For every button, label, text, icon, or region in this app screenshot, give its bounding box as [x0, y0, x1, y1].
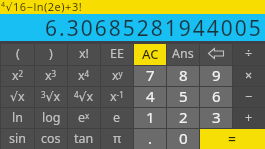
button[interactable]: = [200, 129, 265, 149]
staticText: 1 [146, 107, 155, 127]
staticText: ( [16, 45, 20, 62]
staticText: x2 [12, 67, 24, 84]
button[interactable]: 8 [167, 66, 199, 86]
button[interactable]: 4√x [68, 87, 100, 107]
staticText: tan [74, 130, 94, 147]
staticText: π [113, 130, 122, 147]
staticText: EE [110, 45, 124, 62]
staticText: × [245, 67, 253, 84]
button[interactable]: x4 [68, 66, 100, 86]
staticText: x! [79, 45, 89, 62]
staticText: log [42, 109, 61, 126]
staticText: sin [9, 130, 26, 147]
button[interactable]: tan [68, 129, 100, 149]
staticText: 2 [179, 107, 188, 127]
button[interactable]: log [35, 108, 67, 128]
staticText: 4√16−ln(2e)+3! [1, 0, 83, 13]
staticText: 7 [146, 65, 155, 85]
button[interactable]: sin [1, 129, 34, 149]
staticText: ln [12, 109, 23, 126]
button[interactable]: AC [134, 44, 166, 65]
button[interactable]: x! [68, 44, 100, 65]
button[interactable]: + [233, 108, 265, 128]
button[interactable]: x-1 [101, 87, 133, 107]
button[interactable]: cos [35, 129, 67, 149]
button[interactable]: − [233, 87, 265, 107]
button[interactable]: 0 [167, 129, 199, 149]
button[interactable]: √x [1, 87, 34, 107]
staticText: x-1 [110, 88, 124, 105]
button[interactable]: ) [35, 44, 67, 65]
button[interactable]: 5 [167, 87, 199, 107]
staticText: 6 [212, 86, 221, 106]
staticText: 8 [179, 65, 188, 85]
staticText: xy [112, 67, 123, 84]
staticText: ) [49, 45, 53, 62]
staticText: 9 [212, 65, 221, 85]
button[interactable]: 1 [134, 108, 166, 128]
staticText: √x [10, 88, 25, 105]
staticText: AC [142, 45, 159, 63]
staticText: = [228, 129, 237, 148]
staticText: 4 [146, 86, 155, 106]
button[interactable]: 9 [200, 66, 232, 86]
button[interactable]: . [134, 129, 166, 149]
staticText: 3 [212, 107, 221, 127]
staticText: x4 [78, 67, 90, 84]
staticText: 6.30685281944005 [45, 14, 263, 41]
staticText: Ans [172, 45, 194, 62]
staticText: − [245, 88, 253, 105]
staticText: 5 [179, 86, 188, 106]
staticText: ex [78, 109, 90, 126]
button[interactable]: 4 [134, 87, 166, 107]
button[interactable]: ln [1, 108, 34, 128]
button[interactable]: e [101, 108, 133, 128]
button[interactable]: EE [101, 44, 133, 65]
staticText: e [113, 109, 121, 126]
button[interactable]: Ans [167, 44, 199, 65]
staticText: 4√x [74, 88, 94, 105]
button[interactable]: π [101, 129, 133, 149]
staticText: x3 [45, 67, 57, 84]
staticText: . [148, 128, 153, 148]
button[interactable]: × [233, 66, 265, 86]
button[interactable]: x2 [1, 66, 34, 86]
button[interactable]: Backspace [200, 44, 232, 65]
button[interactable]: ex [68, 108, 100, 128]
button[interactable]: 6 [200, 87, 232, 107]
button[interactable]: xy [101, 66, 133, 86]
staticText: 0 [179, 128, 188, 148]
button[interactable]: 3√x [35, 87, 67, 107]
button[interactable]: ( [1, 44, 34, 65]
button[interactable]: ÷ [233, 44, 265, 65]
button[interactable]: 2 [167, 108, 199, 128]
button[interactable]: 3 [200, 108, 232, 128]
staticText: + [245, 109, 253, 126]
staticText: ÷ [245, 45, 253, 62]
staticText: 3√x [41, 88, 61, 105]
button[interactable]: x3 [35, 66, 67, 86]
staticText: cos [41, 130, 61, 147]
button[interactable]: 7 [134, 66, 166, 86]
